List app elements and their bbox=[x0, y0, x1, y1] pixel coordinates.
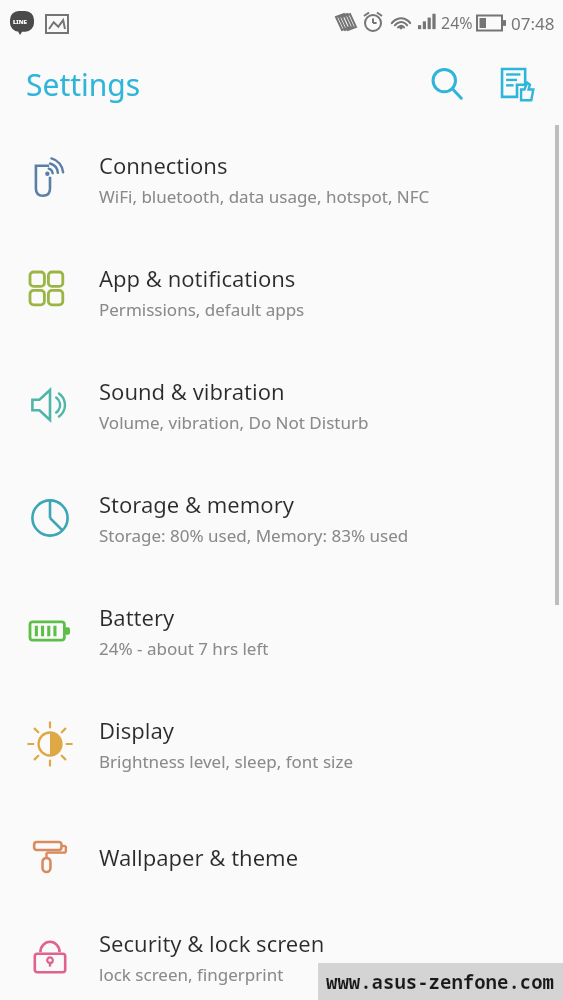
staticText: lock screen, fingerprint bbox=[99, 963, 284, 986]
button[interactable]: Search bbox=[423, 60, 471, 108]
staticText: Sound & vibration bbox=[99, 376, 285, 406]
staticText: Display bbox=[99, 715, 175, 745]
staticText: App & notifications bbox=[99, 263, 296, 293]
staticText: Security & lock screen bbox=[99, 928, 325, 958]
staticText: Settings bbox=[26, 64, 141, 105]
button[interactable]: Battery bbox=[0, 574, 563, 687]
staticText: 24% - about 7 hrs left bbox=[99, 637, 269, 660]
staticText: Storage: 80% used, Memory: 83% used bbox=[99, 524, 409, 547]
button[interactable]: Sound & vibration bbox=[0, 348, 563, 461]
button[interactable]: Connections bbox=[0, 122, 563, 235]
staticText: 07:48 bbox=[511, 12, 555, 35]
staticText: Permissions, default apps bbox=[99, 298, 305, 321]
staticText: LINE bbox=[13, 18, 27, 26]
staticText: WiFi, bluetooth, data usage, hotspot, NF… bbox=[99, 185, 430, 208]
staticText: www.asus-zenfone.com bbox=[326, 969, 555, 995]
button[interactable]: Security & lock screen bbox=[0, 913, 563, 1000]
button[interactable]: Feedback bbox=[493, 60, 541, 108]
staticText: Wallpaper & theme bbox=[99, 842, 299, 872]
button[interactable]: App & notifications bbox=[0, 235, 563, 348]
staticText: Connections bbox=[99, 150, 228, 180]
staticText: Battery bbox=[99, 602, 175, 632]
staticText: 24% bbox=[441, 12, 473, 34]
button[interactable]: Display bbox=[0, 687, 563, 800]
button[interactable]: Storage & memory bbox=[0, 461, 563, 574]
button[interactable]: Wallpaper & theme bbox=[0, 800, 563, 913]
staticText: Storage & memory bbox=[99, 489, 294, 519]
staticText: Volume, vibration, Do Not Disturb bbox=[99, 411, 369, 434]
staticText: Brightness level, sleep, font size bbox=[99, 750, 354, 773]
